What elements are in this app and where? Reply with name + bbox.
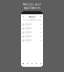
button[interactable]: Add (39, 15, 42, 18)
button[interactable]: Tab 3 (30, 61, 34, 67)
button[interactable] (21, 23, 43, 27)
staticText: Apps (28, 15, 35, 18)
button[interactable] (21, 39, 43, 43)
staticText: applications (24, 6, 40, 10)
button[interactable]: Tab 4 (34, 61, 39, 67)
button[interactable] (21, 35, 43, 39)
button[interactable]: Back (22, 15, 25, 18)
button[interactable] (21, 27, 43, 31)
button[interactable] (21, 31, 43, 35)
button[interactable]: Tab 1 (21, 61, 25, 67)
button[interactable]: Tab 2 (25, 61, 30, 67)
button[interactable]: Tab 5 (39, 61, 43, 67)
button[interactable]: Search (22, 19, 42, 21)
staticText: Monitor your (23, 3, 41, 6)
